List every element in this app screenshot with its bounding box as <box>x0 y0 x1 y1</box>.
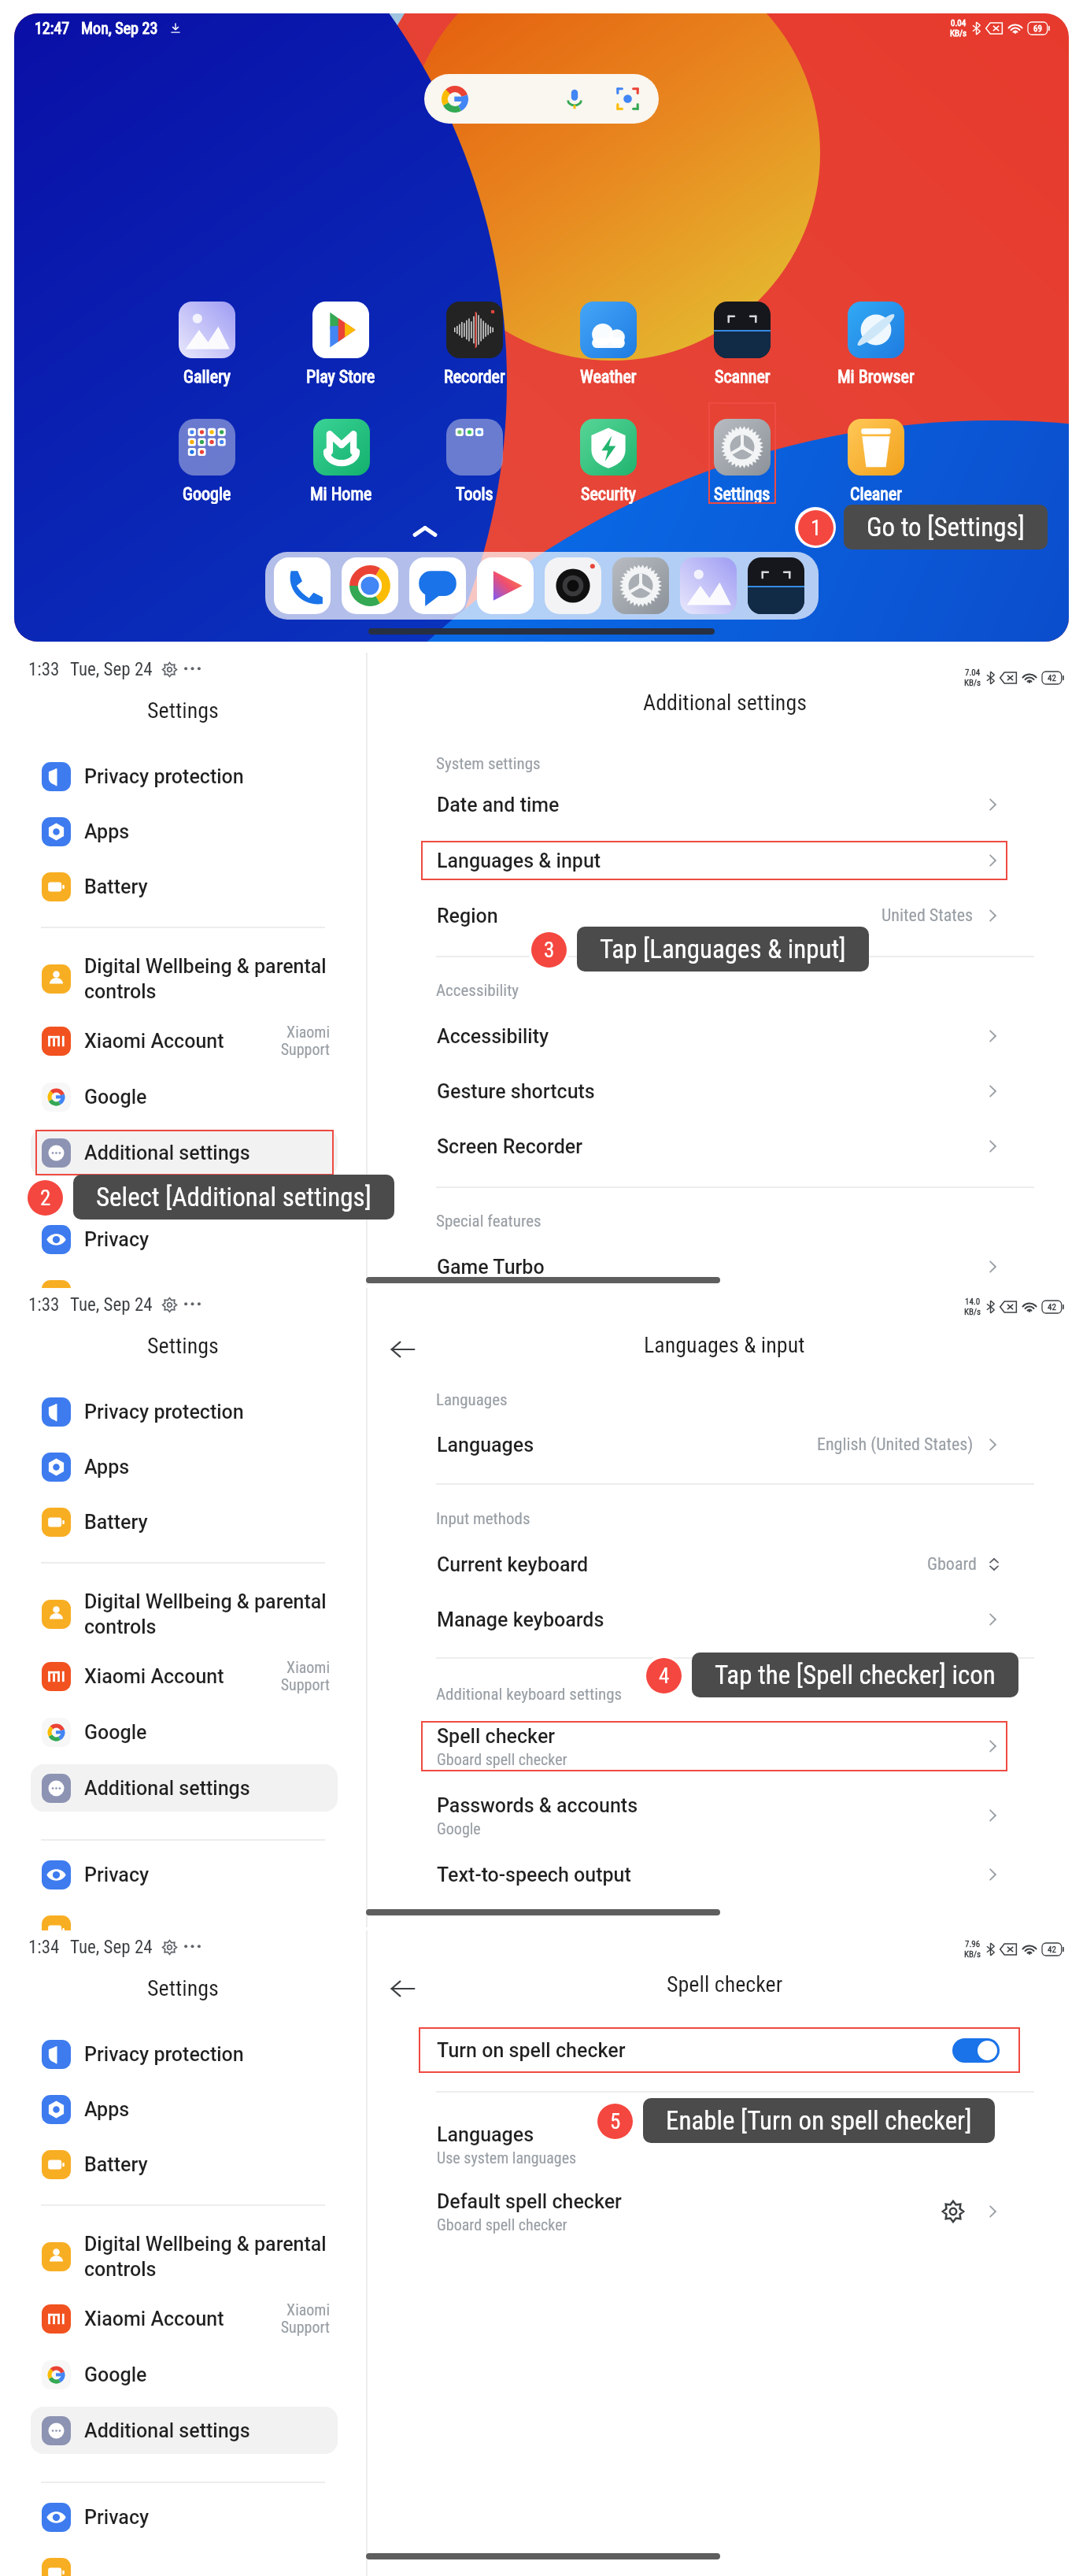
button[interactable]: Google <box>31 2351 338 2398</box>
button[interactable]: Passwords & accounts <box>421 1790 1007 1841</box>
button[interactable]: Turn on spell checker <box>419 2027 1020 2073</box>
button[interactable]: Additional settings <box>31 1129 338 1176</box>
button[interactable]: Cleaner <box>808 405 944 504</box>
button[interactable]: Security <box>541 405 676 504</box>
staticText: Input methods <box>436 1509 530 1529</box>
button[interactable]: Recorder <box>407 287 542 387</box>
staticText: 1:33 <box>28 1294 60 1316</box>
button[interactable]: Battery <box>31 1498 338 1545</box>
staticText: Digital Wellbeing & parental controls <box>84 1590 327 1638</box>
staticText: Screen Recorder <box>437 1135 582 1158</box>
button[interactable]: Gesture shortcuts <box>421 1066 1007 1116</box>
button[interactable]: Screen Recorder <box>421 1121 1007 1171</box>
button[interactable]: Additional settings <box>31 1764 338 1812</box>
button[interactable]: Google <box>31 1073 338 1120</box>
staticText: Gesture shortcuts <box>437 1080 595 1103</box>
staticText: Google <box>84 1086 147 1108</box>
staticText: Xiaomi Account <box>84 1665 224 1688</box>
button[interactable]: Date and time <box>421 779 1007 830</box>
staticText: Scanner <box>715 367 771 387</box>
staticText: Apps <box>84 2098 130 2121</box>
staticText: Mi Browser <box>837 367 915 387</box>
staticText: Text-to-speech output <box>437 1864 631 1886</box>
button[interactable]: Privacy <box>31 2493 338 2541</box>
staticText: Recorder <box>444 367 505 387</box>
staticText: Default spell checker <box>437 2190 622 2213</box>
staticText: Settings <box>147 1333 219 1359</box>
staticText: 4 <box>659 1664 670 1689</box>
button[interactable]: Camera <box>545 557 601 614</box>
staticText: Manage keyboards <box>437 1608 604 1631</box>
button[interactable]: Settings <box>612 557 669 614</box>
button[interactable]: Languages <box>421 2119 1007 2170</box>
staticText: Special features <box>436 1212 541 1231</box>
staticText: 5 <box>610 2109 621 2134</box>
button[interactable]: Privacy <box>31 1851 338 1898</box>
staticText: System settings <box>436 754 541 774</box>
button[interactable]: Scanner <box>675 287 810 387</box>
staticText: Region <box>437 905 498 927</box>
button[interactable]: Privacy <box>31 1216 338 1263</box>
button[interactable]: Apps <box>31 1443 338 1490</box>
button[interactable]: Accessibility <box>421 1011 1007 1061</box>
button[interactable]: Battery <box>31 863 338 910</box>
button[interactable]: Tools <box>407 405 542 504</box>
button[interactable]: Google <box>31 1708 338 1756</box>
button[interactable]: Scanner <box>748 557 804 614</box>
button[interactable]: Battery <box>31 2141 338 2188</box>
button[interactable]: Additional settings <box>31 2407 338 2454</box>
button[interactable]: Xiaomi Account <box>31 1653 338 1700</box>
button[interactable]: Back <box>383 1329 423 1370</box>
button[interactable]: Languages <box>421 1419 1007 1470</box>
staticText: Languages <box>436 1390 508 1410</box>
button[interactable]: Play Store <box>273 287 408 387</box>
button[interactable]: Digital Wellbeing & parental controls <box>31 2233 338 2280</box>
button[interactable] <box>31 1906 338 1953</box>
button[interactable]: Default spell checker <box>421 2186 1007 2237</box>
staticText: Xiaomi Account <box>84 1030 224 1053</box>
button[interactable]: Weather <box>541 287 676 387</box>
button[interactable]: Privacy protection <box>31 1388 338 1435</box>
button[interactable]: Xiaomi Account <box>31 2295 338 2342</box>
button[interactable]: Gallery <box>139 287 275 387</box>
button[interactable]: Privacy protection <box>31 2030 338 2078</box>
button[interactable]: Digital Wellbeing & parental controls <box>31 955 338 1002</box>
button[interactable]: Apps <box>31 2086 338 2133</box>
button[interactable]: Xiaomi Account <box>31 1017 338 1064</box>
button[interactable]: Manage keyboards <box>421 1594 1007 1645</box>
button[interactable]: Privacy protection <box>31 753 338 800</box>
button[interactable]: Region <box>421 890 1007 941</box>
button[interactable] <box>31 1271 338 1318</box>
button[interactable]: Game Turbo <box>421 1242 1007 1292</box>
button[interactable]: Gallery <box>680 557 737 614</box>
staticText: 2 <box>40 1186 51 1211</box>
staticText: Xiaomi Account <box>84 2308 224 2330</box>
staticText: Gboard <box>927 1554 977 1575</box>
button[interactable]: Mi Video <box>477 557 534 614</box>
button[interactable]: Back <box>383 1968 423 2009</box>
button[interactable]: Google <box>139 405 275 504</box>
button[interactable]: Chrome <box>342 557 398 614</box>
button[interactable] <box>31 2548 338 2576</box>
button[interactable]: Messages <box>409 557 466 614</box>
button[interactable]: Text-to-speech output <box>421 1849 1007 1900</box>
staticText: Battery <box>84 875 148 898</box>
staticText: 7.04 <box>965 668 981 678</box>
button[interactable]: Mi Home <box>273 405 408 504</box>
button[interactable]: Phone <box>274 557 331 614</box>
button[interactable]: Current keyboard <box>421 1539 1007 1590</box>
staticText: Settings <box>714 484 771 504</box>
staticText: 1:34 <box>28 1937 60 1958</box>
button[interactable]: Languages & input <box>421 835 1007 886</box>
staticText: Privacy <box>84 2506 150 2529</box>
staticText: Digital Wellbeing & parental controls <box>84 2233 327 2280</box>
button[interactable]: Spell checker <box>421 1721 1007 1771</box>
staticText: Digital Wellbeing & parental controls <box>84 955 327 1002</box>
button[interactable] <box>424 74 659 124</box>
button[interactable]: Apps <box>31 808 338 855</box>
staticText: Game Turbo <box>437 1256 545 1279</box>
staticText: Tap the [Spell checker] icon <box>715 1660 996 1690</box>
button[interactable]: Mi Browser <box>808 287 944 387</box>
button[interactable]: Digital Wellbeing & parental controls <box>31 1590 338 1638</box>
button[interactable]: Settings <box>675 405 810 504</box>
